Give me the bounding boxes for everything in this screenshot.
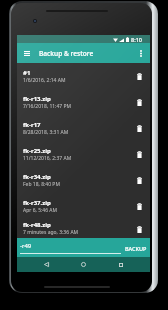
staticText: fk-r25.zip: [23, 147, 51, 155]
staticText: fk-r48.zip: [23, 221, 51, 229]
staticText: 8/28/2018, 3:31 AM: [23, 129, 69, 136]
button[interactable]: Delete backup: [132, 147, 146, 161]
staticText: 8:10: [131, 36, 142, 43]
staticText: Backup & restore: [39, 49, 94, 58]
button[interactable]: Delete backup: [132, 222, 146, 236]
staticText: Feb 18, 8:40 PM: [23, 181, 60, 188]
button[interactable]: -r49: [20, 241, 121, 254]
staticText: 7 minutes ago, 3:36 AM: [23, 229, 79, 236]
button[interactable]: More options: [131, 44, 150, 63]
button[interactable]: fk-r17: [17, 115, 150, 141]
button[interactable]: Open navigation menu: [17, 44, 36, 63]
button[interactable]: fk-r13.zip: [17, 89, 150, 115]
button[interactable]: fk-r34.zip: [17, 167, 150, 193]
button[interactable]: Delete backup: [132, 199, 146, 213]
staticText: BACKUP: [125, 245, 147, 252]
button[interactable]: #1: [17, 63, 150, 89]
staticText: 11/12/2016, 2:37 AM: [23, 155, 72, 162]
button[interactable]: Home: [77, 258, 90, 271]
staticText: fk-r17: [23, 121, 41, 129]
button[interactable]: BACKUP: [123, 241, 149, 255]
staticText: 1/6/2016, 2:14 AM: [23, 77, 66, 84]
button[interactable]: Recent apps: [114, 258, 127, 271]
staticText: 7/16/2018, 11:47 PM: [23, 103, 72, 110]
staticText: fk-r37.zip: [23, 199, 51, 207]
button[interactable]: Delete backup: [132, 173, 146, 187]
staticText: #1: [23, 69, 31, 77]
button[interactable]: fk-r48.zip: [17, 219, 150, 238]
staticText: -r49: [20, 242, 32, 250]
button[interactable]: Delete backup: [132, 69, 146, 83]
button[interactable]: Delete backup: [132, 95, 146, 109]
staticText: fk-r34.zip: [23, 173, 51, 181]
button[interactable]: fk-r37.zip: [17, 193, 150, 219]
staticText: Apr 6, 5:46 AM: [23, 207, 58, 214]
button[interactable]: Back: [40, 258, 53, 271]
button[interactable]: Delete backup: [132, 121, 146, 135]
staticText: fk-r13.zip: [23, 95, 51, 103]
button[interactable]: fk-r25.zip: [17, 141, 150, 167]
